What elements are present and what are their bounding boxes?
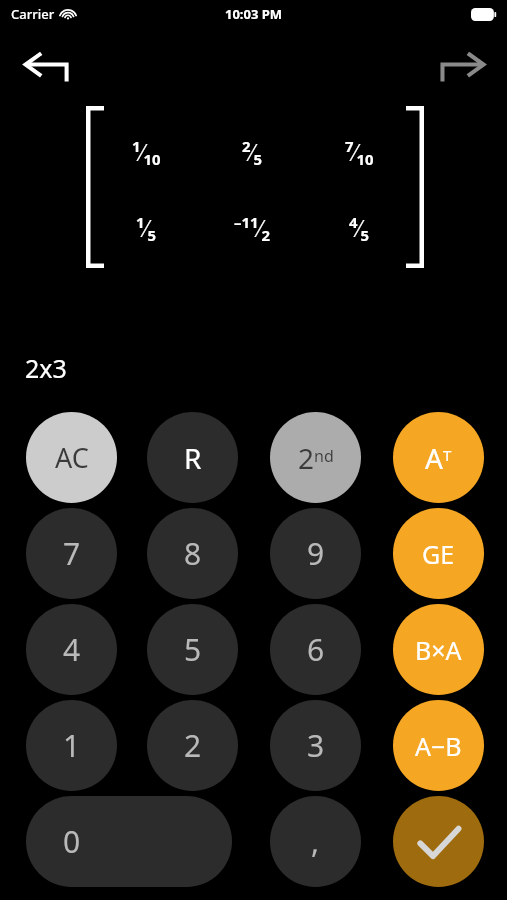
staticText: 10:03 PM [225,5,283,23]
staticText: 0 [63,821,81,862]
staticText: AT [425,439,452,477]
button[interactable]: GE [393,508,484,599]
staticText: 8 [184,533,202,574]
staticText: R [184,439,202,477]
staticText: GE [422,537,455,571]
button[interactable]: , [270,796,361,887]
staticText: 2x3 [25,351,67,385]
button[interactable]: 2nd [270,412,361,503]
button[interactable]: 8 [147,508,238,599]
staticText: 2nd [298,439,334,477]
button[interactable]: 5 [147,604,238,695]
button[interactable]: AT [393,412,484,503]
button[interactable]: 7 [26,508,117,599]
staticText: B×A [415,633,462,667]
button[interactable]: 3 [270,700,361,791]
button[interactable]: 6 [270,604,361,695]
staticText: 7 [63,533,81,574]
staticText: 4 [63,629,81,670]
staticText: 5 [184,629,202,670]
button[interactable]: 0 [26,796,232,887]
button[interactable]: AC [26,412,117,503]
staticText: Carrier [11,5,55,23]
staticText: 9 [307,533,325,574]
button[interactable]: Undo [18,42,72,90]
button[interactable]: 4 [26,604,117,695]
staticText: 2 [184,725,202,766]
button[interactable]: 2 [147,700,238,791]
button[interactable]: Confirm [393,796,484,887]
staticText: 4⁄5 [349,211,369,246]
button[interactable]: 9 [270,508,361,599]
button[interactable]: A−B [393,700,484,791]
staticText: 2⁄5 [242,135,262,170]
staticText: 3 [307,725,325,766]
button[interactable]: B×A [393,604,484,695]
staticText: 7⁄10 [345,135,374,170]
button[interactable]: Redo [436,42,490,90]
staticText: , [311,821,320,862]
button[interactable]: 1 [26,700,117,791]
staticText: AC [55,439,89,476]
staticText: 6 [307,629,325,670]
staticText: A−B [415,729,462,763]
staticText: –11⁄2 [234,211,270,246]
button[interactable]: R [147,412,238,503]
staticText: 1 [63,725,81,766]
staticText: 1⁄10 [132,135,161,170]
staticText: 1⁄5 [136,211,156,246]
